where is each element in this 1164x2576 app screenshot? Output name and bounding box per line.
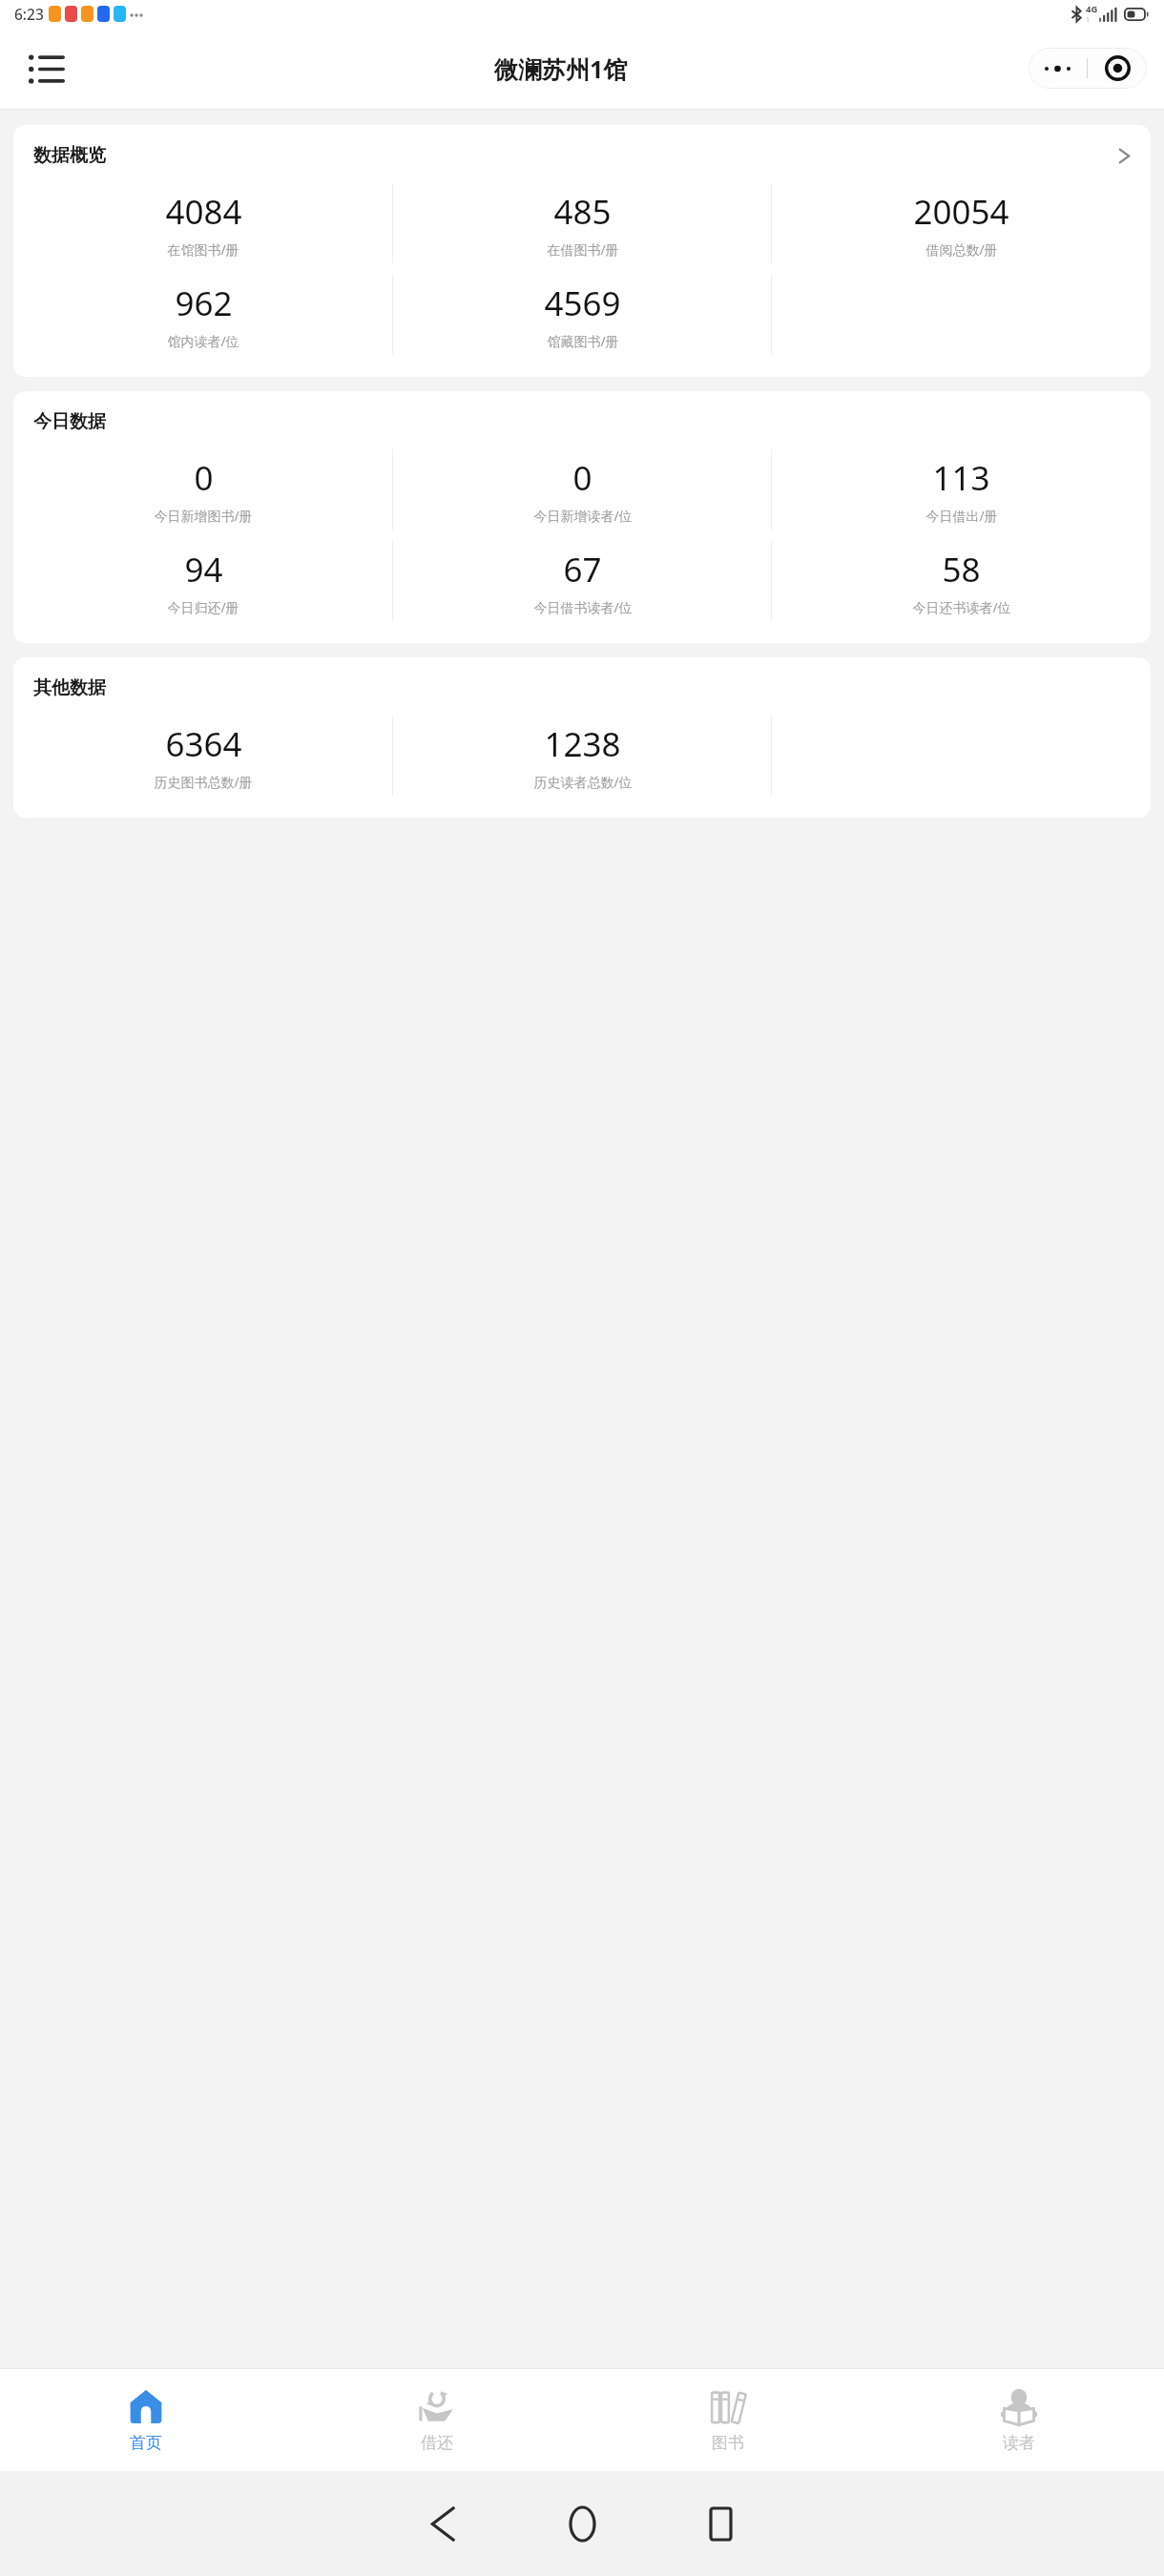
button[interactable]: 其他数据 — [13, 657, 1151, 818]
staticText: 馆藏图书/册 — [547, 332, 619, 350]
staticText: 在借图书/册 — [547, 240, 619, 259]
staticText: 6364 — [165, 721, 242, 767]
staticText: 今日新增图书/册 — [154, 507, 253, 525]
staticText: 今日还书读者/位 — [912, 598, 1011, 616]
staticText: 图书 — [712, 2433, 744, 2453]
button[interactable]: 今日数据 — [13, 391, 1151, 643]
staticText: 其他数据 — [33, 676, 106, 699]
button[interactable]: 图书 — [582, 2369, 873, 2471]
button[interactable]: Recent apps — [676, 2479, 766, 2569]
staticText: 馆内读者/位 — [167, 332, 239, 350]
staticText: 0 — [194, 455, 214, 501]
staticText: 20054 — [913, 189, 1009, 235]
staticText: 借还 — [421, 2433, 453, 2453]
staticText: 58 — [942, 547, 981, 592]
staticText: 1238 — [544, 721, 621, 767]
button[interactable]: 借还 — [291, 2369, 582, 2471]
button[interactable]: 数据概览 — [13, 125, 1151, 377]
button[interactable]: Back — [399, 2479, 489, 2569]
staticText: 数据概览 — [33, 144, 106, 167]
staticText: 今日借书读者/位 — [533, 598, 633, 616]
button[interactable]: Home — [537, 2479, 628, 2569]
button[interactable]: Menu — [19, 41, 74, 96]
staticText: 借阅总数/册 — [925, 240, 998, 259]
staticText: 962 — [175, 280, 233, 326]
staticText: 今日归还/册 — [167, 598, 239, 616]
staticText: 今日数据 — [33, 410, 106, 433]
staticText: 94 — [184, 547, 223, 592]
staticText: 67 — [563, 547, 602, 592]
staticText: 4569 — [544, 280, 621, 326]
staticText: 0 — [572, 455, 592, 501]
button[interactable]: 首页 — [0, 2369, 291, 2471]
staticText: 微澜苏州1馆 — [494, 52, 628, 85]
button[interactable]: Close mini program — [1088, 48, 1147, 89]
staticText: 在馆图书/册 — [167, 240, 239, 259]
staticText: 4084 — [165, 189, 242, 235]
staticText: 今日新增读者/位 — [533, 507, 633, 525]
staticText: 历史读者总数/位 — [533, 773, 633, 791]
staticText: 首页 — [130, 2433, 162, 2453]
staticText: 1 — [1086, 15, 1091, 25]
button[interactable]: 读者 — [873, 2369, 1164, 2471]
staticText: 今日借出/册 — [925, 507, 998, 525]
staticText: 读者 — [1003, 2433, 1035, 2453]
staticText: 485 — [553, 189, 612, 235]
staticText: 4G — [1086, 3, 1098, 15]
staticText: 113 — [932, 455, 990, 501]
button[interactable]: More — [1029, 48, 1087, 89]
staticText: 6:23 — [14, 4, 44, 24]
staticText: 历史图书总数/册 — [154, 773, 253, 791]
